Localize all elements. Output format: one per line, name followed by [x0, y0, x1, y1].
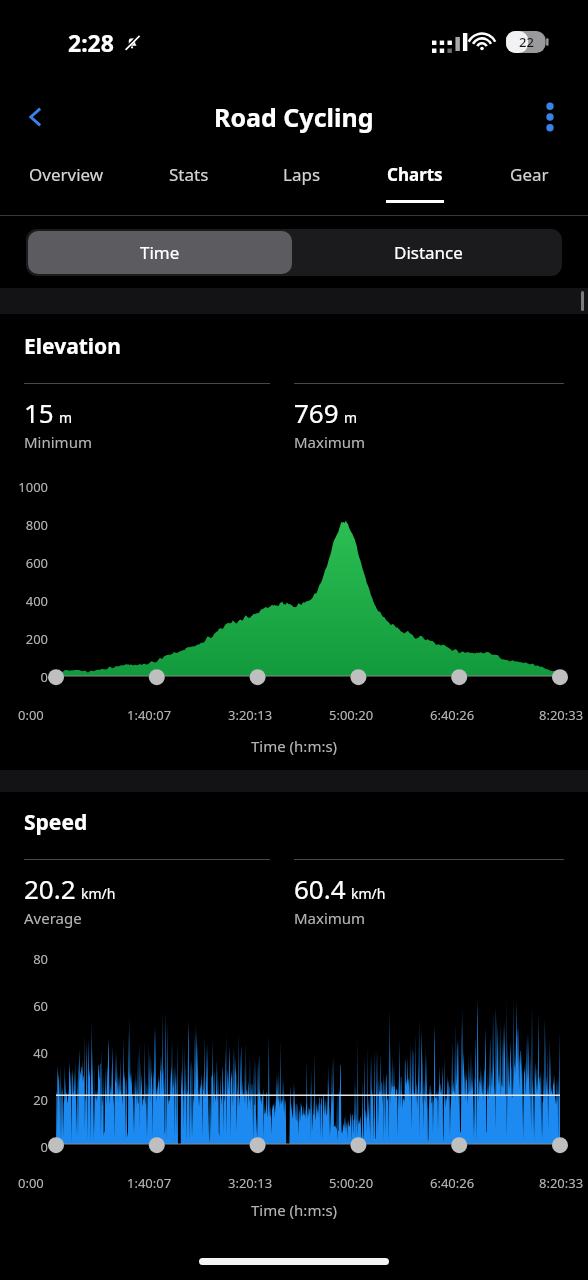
- button[interactable]: Charts: [358, 150, 471, 216]
- staticText: 20.2: [24, 871, 76, 906]
- staticText: Minimum: [24, 432, 92, 452]
- staticText: 0:00: [18, 1174, 44, 1192]
- staticText: 80: [33, 950, 48, 968]
- staticText: 600: [25, 554, 48, 572]
- staticText: Stats: [169, 163, 209, 186]
- staticText: 800: [25, 516, 48, 534]
- staticText: 3:20:13: [228, 706, 273, 724]
- button[interactable]: Time: [28, 231, 292, 274]
- staticText: Distance: [394, 241, 463, 264]
- staticText: 8:20:33: [539, 706, 584, 724]
- staticText: Elevation: [24, 332, 121, 361]
- button[interactable]: Back: [10, 91, 62, 143]
- staticText: 769: [294, 395, 339, 430]
- staticText: Average: [24, 908, 82, 928]
- staticText: 0: [40, 1138, 48, 1156]
- staticText: 400: [25, 592, 48, 610]
- staticText: 0:00: [18, 706, 44, 724]
- staticText: 22: [519, 33, 534, 51]
- staticText: 20: [33, 1091, 48, 1109]
- staticText: 6:40:26: [430, 1174, 475, 1192]
- staticText: 0: [40, 668, 48, 686]
- staticText: Time (h:m:s): [251, 736, 338, 756]
- staticText: Maximum: [294, 908, 366, 928]
- staticText: 15: [24, 395, 54, 430]
- staticText: Road Cycling: [214, 100, 374, 134]
- button[interactable]: Overview: [0, 150, 132, 216]
- staticText: Gear: [510, 163, 549, 186]
- staticText: km/h: [351, 884, 386, 903]
- staticText: 1:40:07: [127, 1174, 172, 1192]
- staticText: 5:00:20: [329, 1174, 374, 1192]
- button[interactable]: Laps: [245, 150, 358, 216]
- staticText: 2:28: [68, 27, 114, 58]
- staticText: Overview: [29, 163, 104, 186]
- staticText: 1:40:07: [127, 706, 172, 724]
- button[interactable]: More options: [524, 91, 576, 143]
- staticText: 60: [33, 997, 48, 1015]
- staticText: Laps: [283, 163, 321, 186]
- staticText: Charts: [387, 163, 443, 186]
- staticText: m: [344, 408, 358, 427]
- staticText: km/h: [81, 884, 116, 903]
- staticText: 5:00:20: [329, 706, 374, 724]
- staticText: 200: [25, 630, 48, 648]
- staticText: 1000: [18, 478, 48, 496]
- staticText: 6:40:26: [430, 706, 475, 724]
- staticText: 3:20:13: [228, 1174, 273, 1192]
- staticText: m: [59, 408, 73, 427]
- staticText: Speed: [24, 808, 88, 837]
- staticText: Maximum: [294, 432, 366, 452]
- staticText: Time: [140, 241, 180, 264]
- staticText: 60.4: [294, 871, 346, 906]
- button[interactable]: Gear: [471, 150, 588, 216]
- button[interactable]: Distance: [294, 229, 562, 276]
- staticText: 8:20:33: [539, 1174, 584, 1192]
- staticText: Time (h:m:s): [251, 1200, 338, 1220]
- staticText: 40: [33, 1044, 48, 1062]
- button[interactable]: Stats: [132, 150, 245, 216]
